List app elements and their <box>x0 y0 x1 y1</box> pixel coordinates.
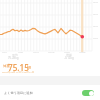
staticText: 2018年10月11日〜10月11日 <box>2 70 35 73</box>
staticText: よく使う項目に追加 <box>4 91 33 95</box>
staticText: 10/16 <box>48 50 55 53</box>
staticText: 75.0 <box>93 24 98 27</box>
staticText: 10/11 <box>33 50 40 53</box>
staticText: 75.5 <box>93 12 98 15</box>
staticText: 10/6 <box>18 50 23 53</box>
staticText: -0.12kg <box>64 56 74 60</box>
staticText: 75.15 <box>8 62 29 73</box>
staticText: kg <box>27 64 31 69</box>
staticText: 平均 <box>12 53 18 57</box>
staticText: 74.5 <box>93 36 98 39</box>
button[interactable]: よく使う項目に追加 <box>0 85 100 100</box>
other: よく使う項目に追加 <box>82 90 94 96</box>
staticText: 10/1 <box>2 50 7 53</box>
staticText: 体重 <box>3 64 10 68</box>
staticText: 10/26 <box>79 50 86 53</box>
staticText: 75.28kg <box>8 56 19 60</box>
staticText: 76.0 <box>93 0 98 3</box>
staticText: 10/21 <box>64 50 71 53</box>
staticText: 増減 <box>66 53 72 57</box>
